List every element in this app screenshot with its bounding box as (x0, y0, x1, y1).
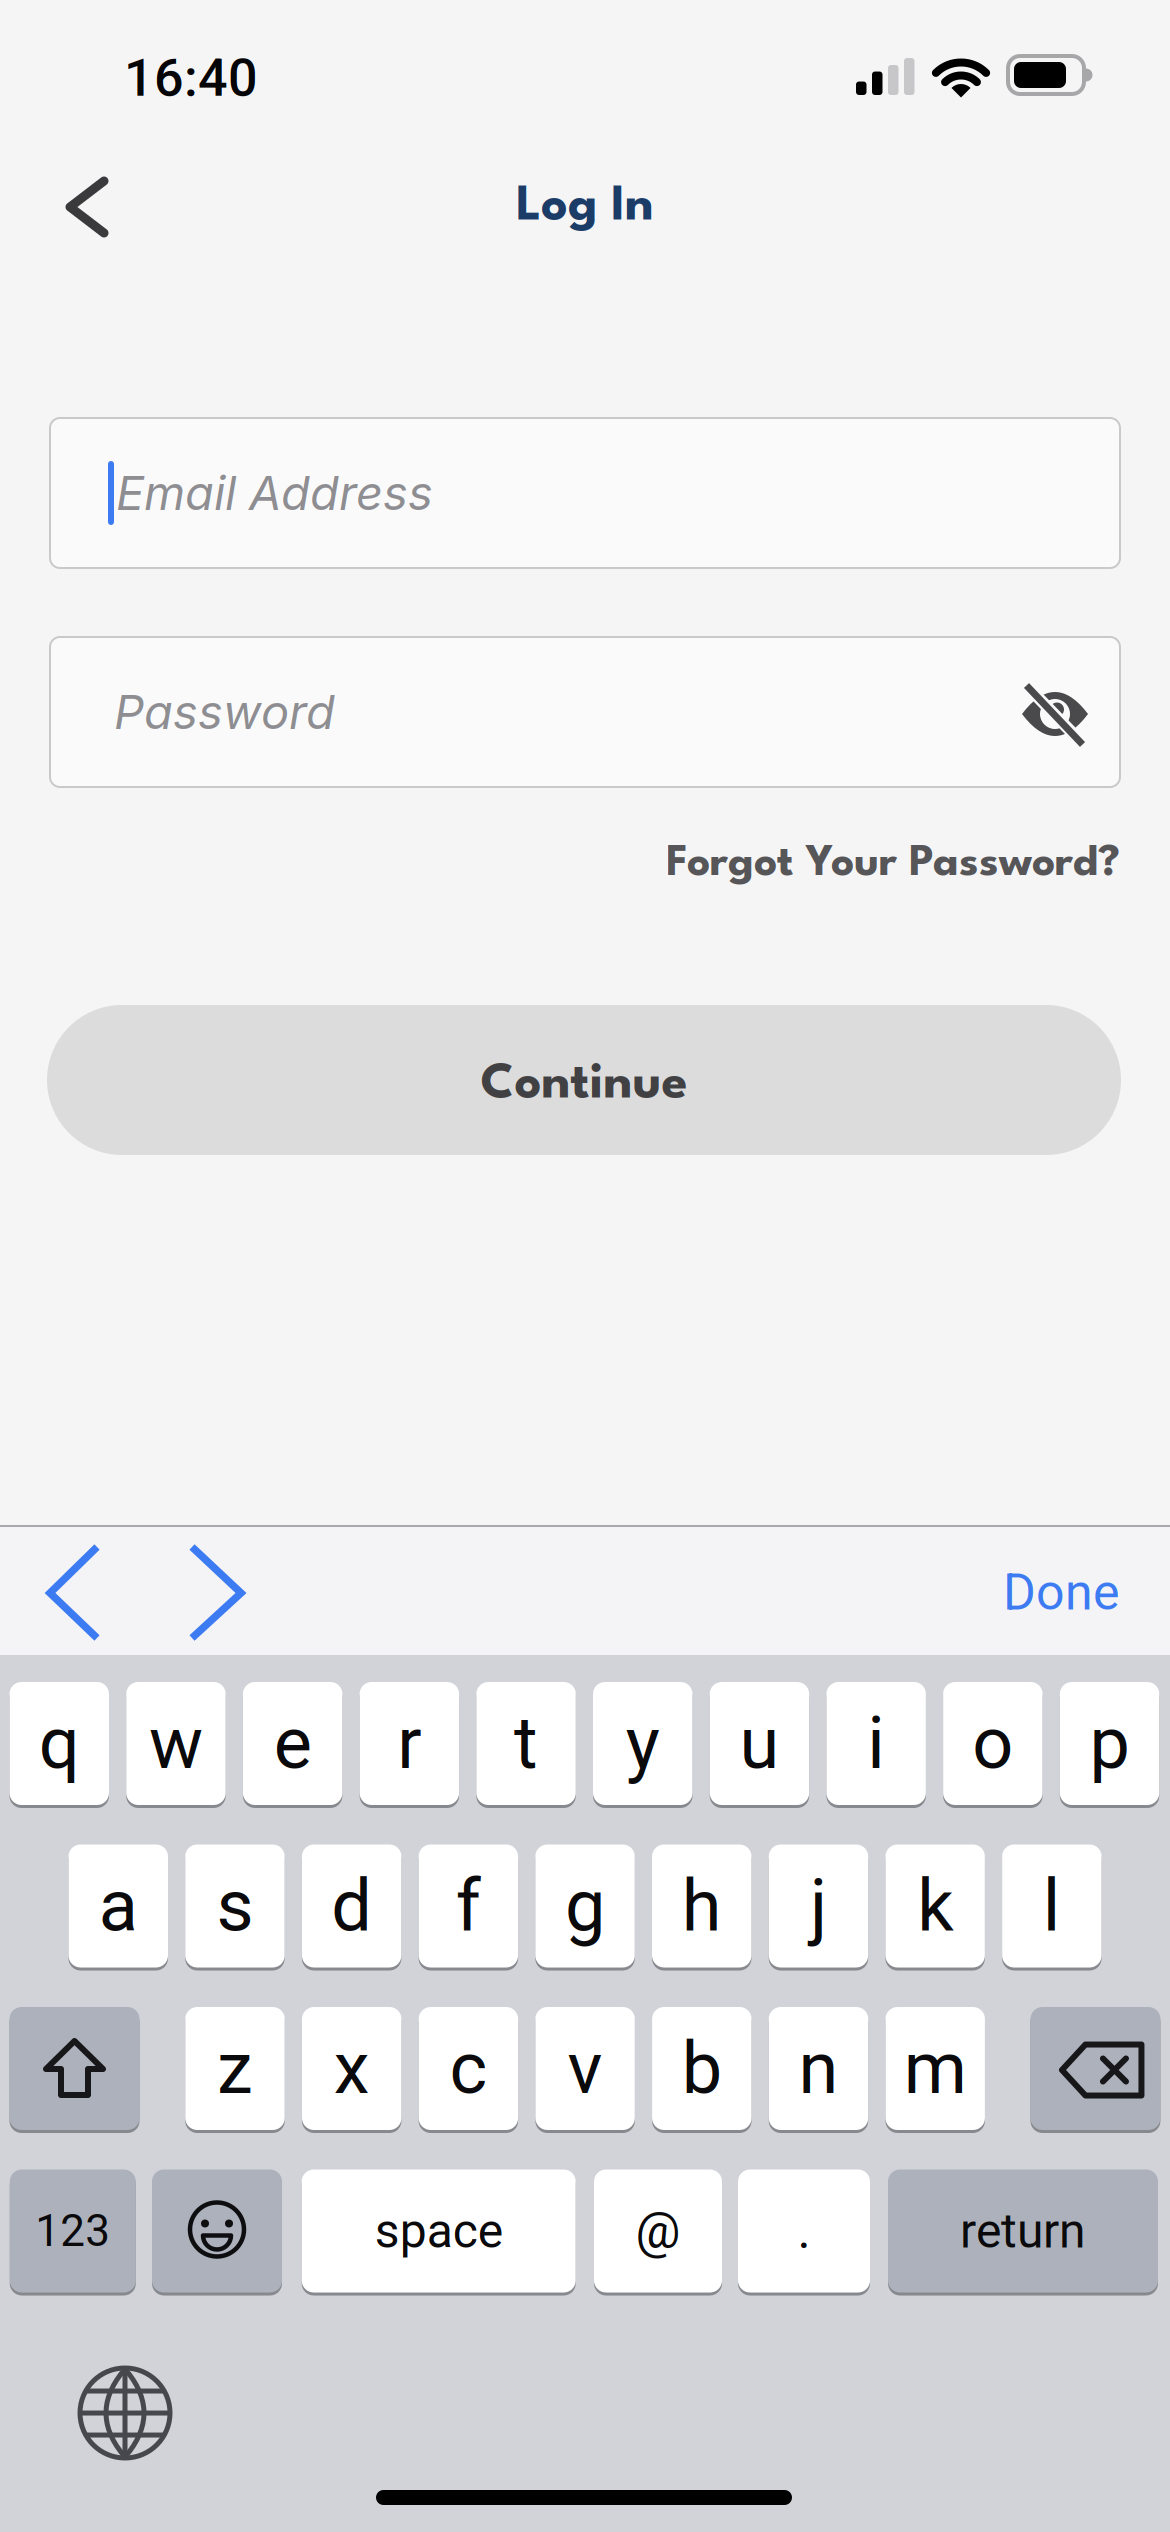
button[interactable]: q (9, 1682, 109, 1805)
button[interactable]: Email Address (50, 418, 1120, 568)
button[interactable]: Switch keyboard (70, 2358, 180, 2468)
staticText: h (682, 1864, 722, 1948)
staticText: Forgot Your Password? (666, 843, 1120, 885)
staticText: c (449, 2026, 487, 2111)
staticText: s (216, 1864, 253, 1948)
staticText: e (274, 1701, 312, 1786)
staticText: . (797, 2202, 810, 2260)
button[interactable]: c (419, 2007, 518, 2130)
button[interactable]: Shift (9, 2007, 139, 2130)
button[interactable]: . (738, 2169, 870, 2292)
button[interactable]: l (1002, 1844, 1102, 1967)
staticText: Password (114, 684, 335, 740)
staticText: v (568, 2026, 603, 2111)
button[interactable]: p (1060, 1682, 1159, 1805)
staticText: Log In (516, 183, 654, 231)
staticText: k (917, 1864, 953, 1948)
button[interactable]: space (302, 2169, 576, 2292)
staticText: r (397, 1701, 421, 1786)
button[interactable]: a (68, 1844, 168, 1967)
staticText: j (810, 1864, 827, 1948)
button[interactable]: d (302, 1844, 401, 1967)
button[interactable]: v (535, 2007, 635, 2130)
button[interactable]: n (769, 2007, 868, 2130)
button[interactable]: u (710, 1682, 809, 1805)
staticText: w (149, 1701, 203, 1786)
button[interactable]: Emoji (152, 2169, 282, 2292)
staticText: x (334, 2026, 370, 2111)
button[interactable]: o (943, 1682, 1043, 1805)
staticText: b (682, 2026, 722, 2111)
staticText: Continue (480, 1061, 687, 1109)
button[interactable]: Back (48, 169, 128, 245)
staticText: t (514, 1701, 538, 1786)
button[interactable]: Forgot Your Password? (666, 843, 1120, 885)
button[interactable]: j (769, 1844, 868, 1967)
button[interactable]: h (652, 1844, 751, 1967)
staticText: y (626, 1701, 660, 1786)
staticText: z (217, 2026, 253, 2111)
staticText: return (960, 2203, 1086, 2259)
button[interactable]: Next field (171, 1537, 261, 1647)
button[interactable]: k (885, 1844, 985, 1967)
button[interactable]: r (360, 1682, 459, 1805)
button[interactable]: e (243, 1682, 342, 1805)
staticText: 16:40 (124, 47, 258, 108)
staticText: i (867, 1701, 885, 1786)
button[interactable]: z (185, 2007, 285, 2130)
button[interactable]: m (885, 2007, 985, 2130)
button[interactable]: Show password (1000, 658, 1110, 768)
button[interactable]: y (593, 1682, 692, 1805)
button[interactable]: f (419, 1844, 518, 1967)
button[interactable]: @ (594, 2169, 722, 2292)
staticText: Done (1003, 1563, 1120, 1622)
button[interactable]: Continue (47, 1005, 1121, 1155)
staticText: g (565, 1864, 605, 1948)
staticText: f (456, 1864, 481, 1948)
button[interactable]: s (185, 1844, 285, 1967)
staticText: 123 (35, 2205, 110, 2257)
staticText: n (798, 2026, 838, 2111)
button[interactable]: g (535, 1844, 635, 1967)
staticText: l (1043, 1864, 1061, 1948)
staticText: q (39, 1701, 80, 1786)
button[interactable]: Delete (1030, 2007, 1160, 2130)
staticText: a (99, 1864, 138, 1948)
button[interactable]: Password (50, 637, 1120, 787)
button[interactable]: Previous field (28, 1537, 118, 1647)
button[interactable]: 123 (10, 2169, 136, 2292)
button[interactable]: t (476, 1682, 576, 1805)
staticText: p (1089, 1701, 1129, 1786)
staticText: @ (635, 2202, 680, 2260)
button[interactable]: b (652, 2007, 751, 2130)
button[interactable]: w (126, 1682, 226, 1805)
staticText: Email Address (116, 465, 433, 521)
staticText: u (739, 1701, 779, 1786)
button[interactable]: x (302, 2007, 401, 2130)
button[interactable]: i (826, 1682, 926, 1805)
button[interactable]: Done (1003, 1563, 1120, 1622)
staticText: space (375, 2203, 503, 2259)
staticText: m (904, 2026, 967, 2111)
staticText: d (331, 1864, 372, 1948)
staticText: o (972, 1701, 1013, 1786)
button[interactable]: return (888, 2169, 1158, 2292)
